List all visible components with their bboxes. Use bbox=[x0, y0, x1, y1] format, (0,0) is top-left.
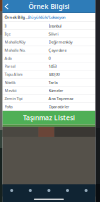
staticText: 0 bbox=[48, 55, 50, 61]
button[interactable]: Konum bbox=[40, 184, 58, 196]
staticText: Örnek Bilgisi bbox=[4, 15, 28, 20]
button[interactable]: İlçe bbox=[2, 30, 95, 38]
button[interactable]: Mevkii bbox=[2, 87, 95, 95]
button[interactable]: Zemin Tipi bbox=[2, 95, 95, 103]
staticText: Oparatörler bbox=[48, 104, 69, 109]
button[interactable]: Pusula bbox=[21, 184, 40, 196]
staticText: 1453 bbox=[48, 64, 56, 69]
button[interactable]: Parsel bbox=[2, 62, 95, 70]
staticText: Taşınmaz Listesi bbox=[23, 113, 75, 122]
staticText: Çayırdere bbox=[48, 47, 66, 53]
staticText: Örnek Bilgisi bbox=[28, 2, 69, 11]
button[interactable]: Tapu Alanı bbox=[2, 70, 95, 79]
button[interactable]: Nitelik bbox=[2, 79, 95, 87]
button[interactable]: Pafta bbox=[2, 103, 95, 111]
button[interactable]: Geri bbox=[2, 0, 13, 13]
staticText: Mahalle/Köy bbox=[4, 39, 25, 45]
staticText: Mahalle No. bbox=[4, 47, 25, 53]
button[interactable]: Mahalle/Köy bbox=[2, 38, 95, 46]
staticText: Silivri bbox=[48, 31, 58, 37]
button[interactable]: Ara bbox=[58, 184, 77, 196]
staticText: İstanbul bbox=[48, 23, 61, 28]
button[interactable]: Örnek Bilgisi bbox=[2, 15, 28, 20]
staticText: Tapu Alanı bbox=[4, 72, 22, 77]
staticText: Ana Taşınmaz bbox=[48, 96, 73, 101]
button[interactable]: Daha fazla bbox=[77, 184, 95, 196]
staticText: Tarla bbox=[48, 80, 57, 85]
staticText: Pafta bbox=[4, 104, 12, 109]
staticText: Mevkii bbox=[4, 88, 16, 93]
button[interactable]: Ada bbox=[2, 54, 95, 62]
staticText: Büyüklük/Lokasyon bbox=[28, 15, 66, 20]
button[interactable]: İl bbox=[2, 22, 95, 30]
button[interactable]: Taşınmaz Listesi bbox=[2, 111, 95, 124]
staticText: Nitelik bbox=[4, 80, 15, 85]
staticText: Değirmenköy bbox=[48, 39, 72, 45]
staticText: Ada bbox=[4, 55, 11, 61]
staticText: Kümeler bbox=[48, 88, 63, 93]
staticText: İlçe bbox=[4, 31, 10, 37]
button[interactable]: Büyüklük/Lokasyon bbox=[28, 15, 66, 20]
button[interactable]: Mahalle No. bbox=[2, 46, 95, 54]
staticText: 440,00 bbox=[48, 72, 59, 77]
staticText: Zemin Tipi bbox=[4, 96, 22, 101]
staticText: İl bbox=[4, 23, 6, 28]
button[interactable]: Katmanlar bbox=[2, 184, 21, 196]
staticText: Parsel bbox=[4, 64, 15, 69]
